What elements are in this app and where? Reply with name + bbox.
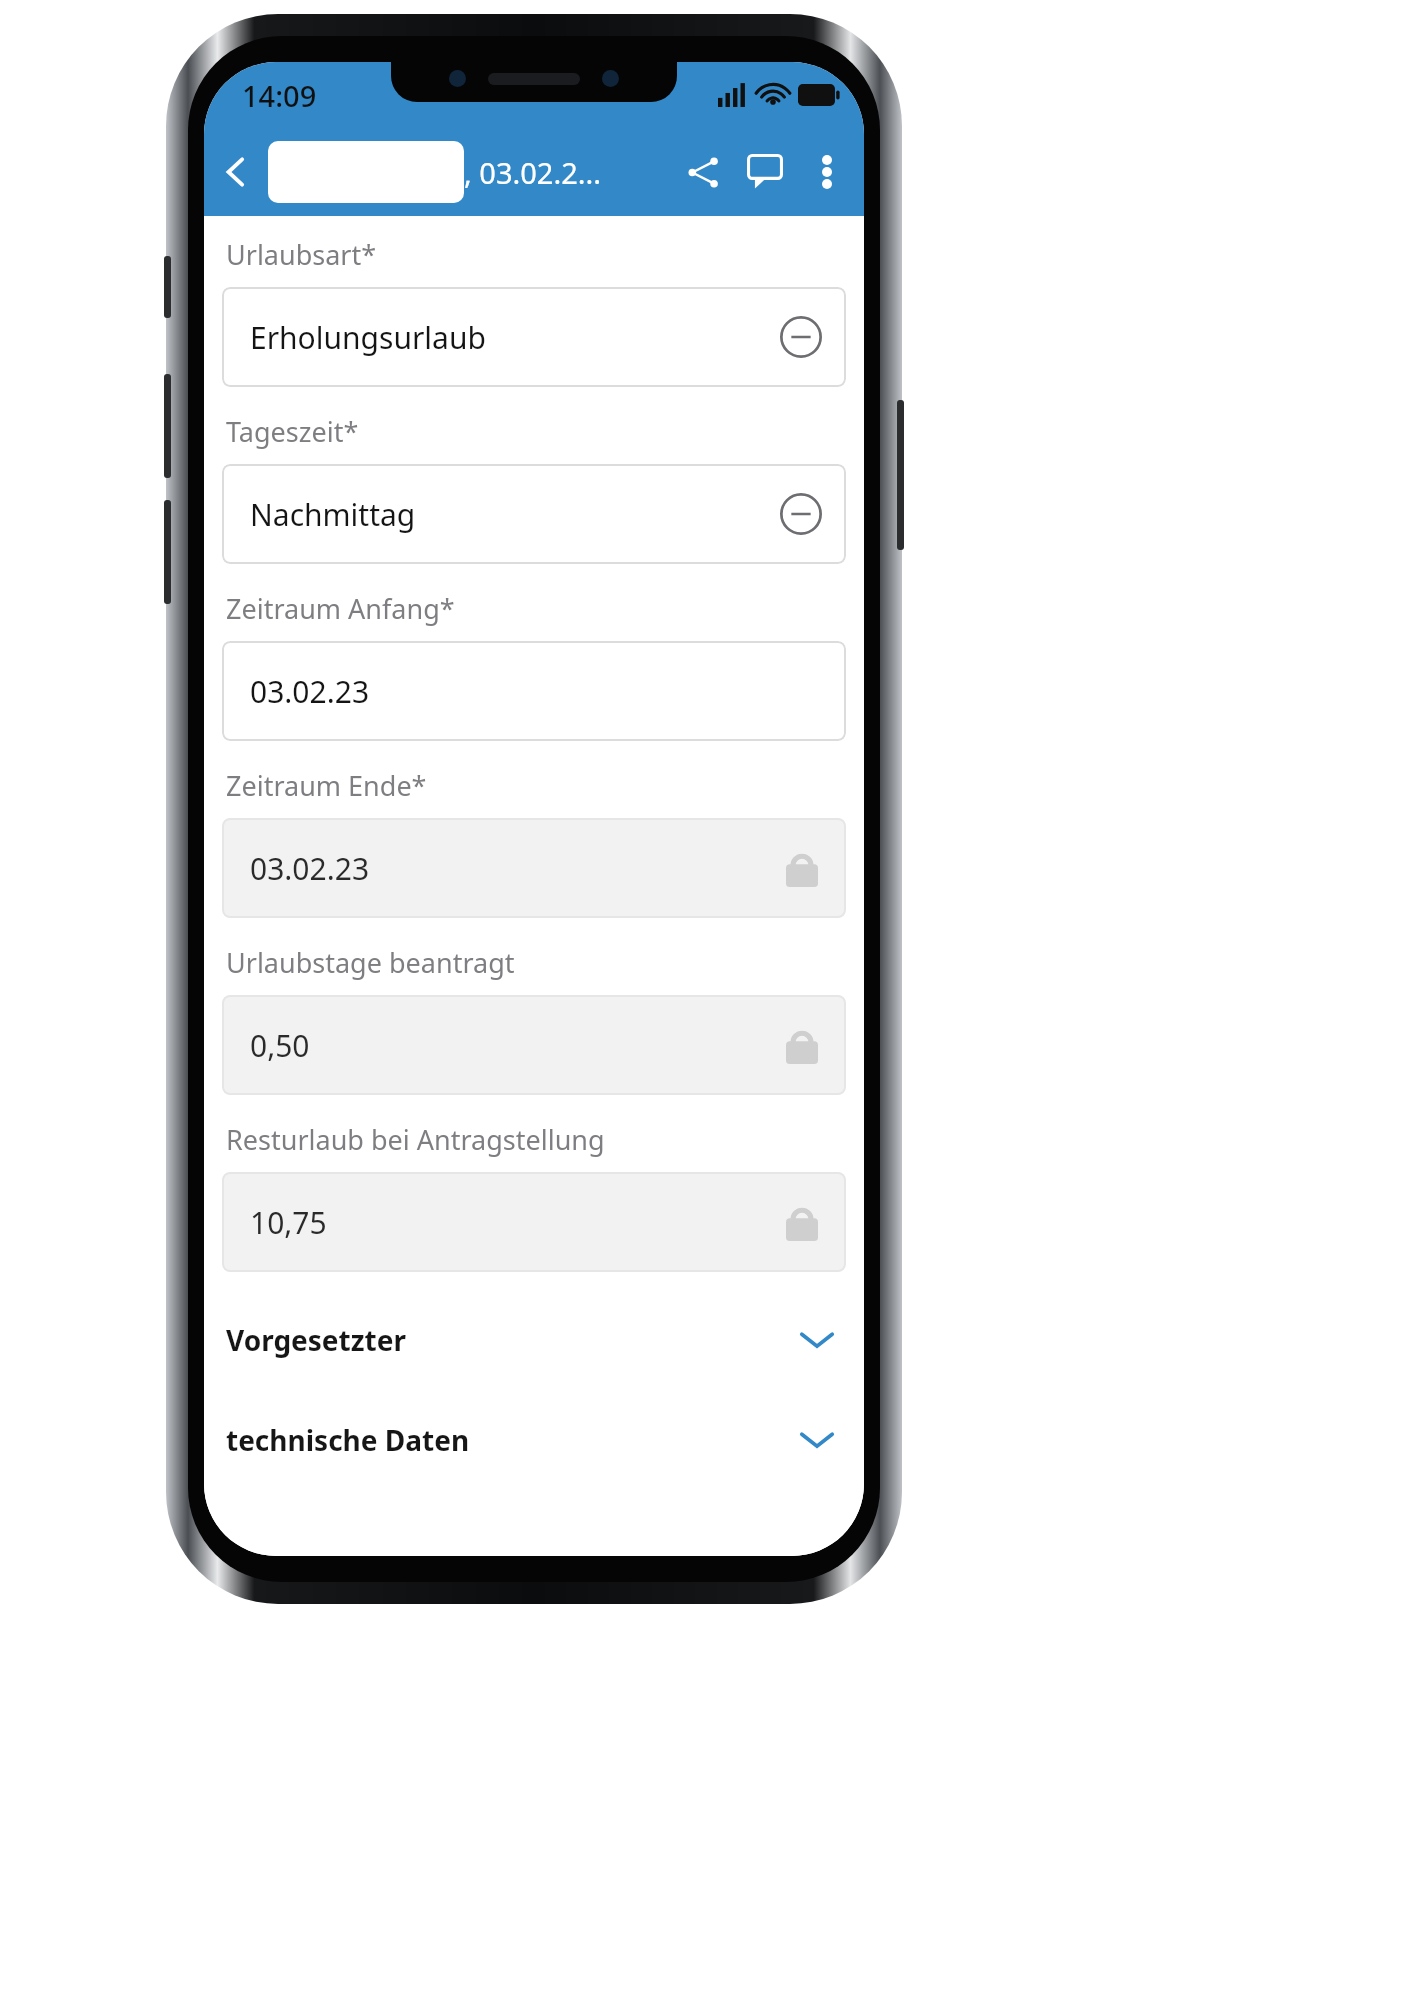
staticText: Zeitraum Ende* (226, 767, 427, 804)
staticText: Zeitraum Anfang* (226, 590, 455, 627)
button[interactable]: Share (672, 128, 734, 216)
button[interactable]: More options (796, 128, 858, 216)
button[interactable]: 0,50 (222, 995, 846, 1095)
staticText: 03.02.23 (250, 848, 786, 889)
staticText: Urlaubsart* (226, 236, 377, 273)
staticText: Urlaubstage beantragt (226, 944, 515, 981)
staticText: Nachmittag (250, 494, 780, 535)
staticText: 03.02.23 (250, 671, 370, 712)
button[interactable]: 03.02.23 (222, 818, 846, 918)
staticText: Erholungsurlaub (250, 317, 780, 358)
button[interactable]: technische Daten (222, 1412, 846, 1468)
staticText: technische Daten (226, 1421, 798, 1459)
button[interactable]: Back (204, 128, 268, 216)
staticText: Resturlaub bei Antragstellung (226, 1121, 605, 1158)
button[interactable]: 03.02.23 (222, 641, 846, 741)
staticText: 10,75 (250, 1202, 786, 1243)
staticText: 14:09 (242, 76, 317, 115)
staticText: Tageszeit* (226, 413, 359, 450)
button[interactable]: Erholungsurlaub (222, 287, 846, 387)
button[interactable]: Vorgesetzter (222, 1312, 846, 1368)
staticText: Vorgesetzter (226, 1321, 798, 1359)
button[interactable]: Nachmittag (222, 464, 846, 564)
button[interactable]: , 03.02.2... (268, 141, 672, 203)
button[interactable]: Comments (734, 128, 796, 216)
staticText: , 03.02.2... (464, 153, 602, 192)
button[interactable]: 10,75 (222, 1172, 846, 1272)
staticText: 0,50 (250, 1025, 786, 1066)
